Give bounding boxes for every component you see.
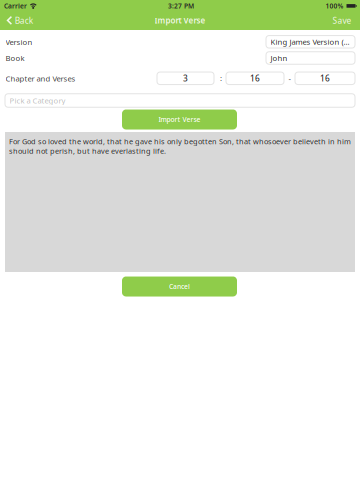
staticText: should not perish, but have everlasting … xyxy=(9,146,166,156)
staticText: 100% xyxy=(325,2,343,10)
button[interactable]: Save xyxy=(326,12,357,29)
staticText: 16 xyxy=(250,73,260,84)
button[interactable]: John xyxy=(266,52,355,64)
staticText: Version xyxy=(5,37,32,47)
button[interactable]: Import Verse xyxy=(122,109,237,129)
staticText: Back xyxy=(15,15,33,26)
staticText: John xyxy=(270,53,287,63)
staticText: 16 xyxy=(320,73,330,84)
button[interactable]: King James Version (… xyxy=(266,35,355,48)
staticText: 3 xyxy=(183,73,188,84)
button[interactable]: 16 xyxy=(226,72,284,84)
staticText: Import Verse xyxy=(154,15,205,26)
staticText: 3:27 PM xyxy=(168,2,194,10)
staticText: King James Version (… xyxy=(270,37,349,47)
staticText: For God so loved the world, that he gave… xyxy=(9,136,351,146)
button[interactable]: 3 xyxy=(157,72,214,84)
staticText: Carrier xyxy=(4,2,27,10)
staticText: Cancel xyxy=(169,282,190,291)
button[interactable]: Cancel xyxy=(122,276,237,296)
staticText: Import Verse xyxy=(158,115,200,124)
staticText: Save xyxy=(332,15,351,26)
staticText: : xyxy=(220,73,222,83)
button[interactable]: 16 xyxy=(295,72,355,84)
button[interactable]: Back xyxy=(0,12,39,29)
staticText: Chapter and Verses xyxy=(5,73,75,84)
staticText: Pick a Category xyxy=(9,95,65,106)
staticText: - xyxy=(288,73,290,83)
staticText: Book xyxy=(5,53,24,63)
button[interactable]: Pick a Category xyxy=(5,94,355,107)
